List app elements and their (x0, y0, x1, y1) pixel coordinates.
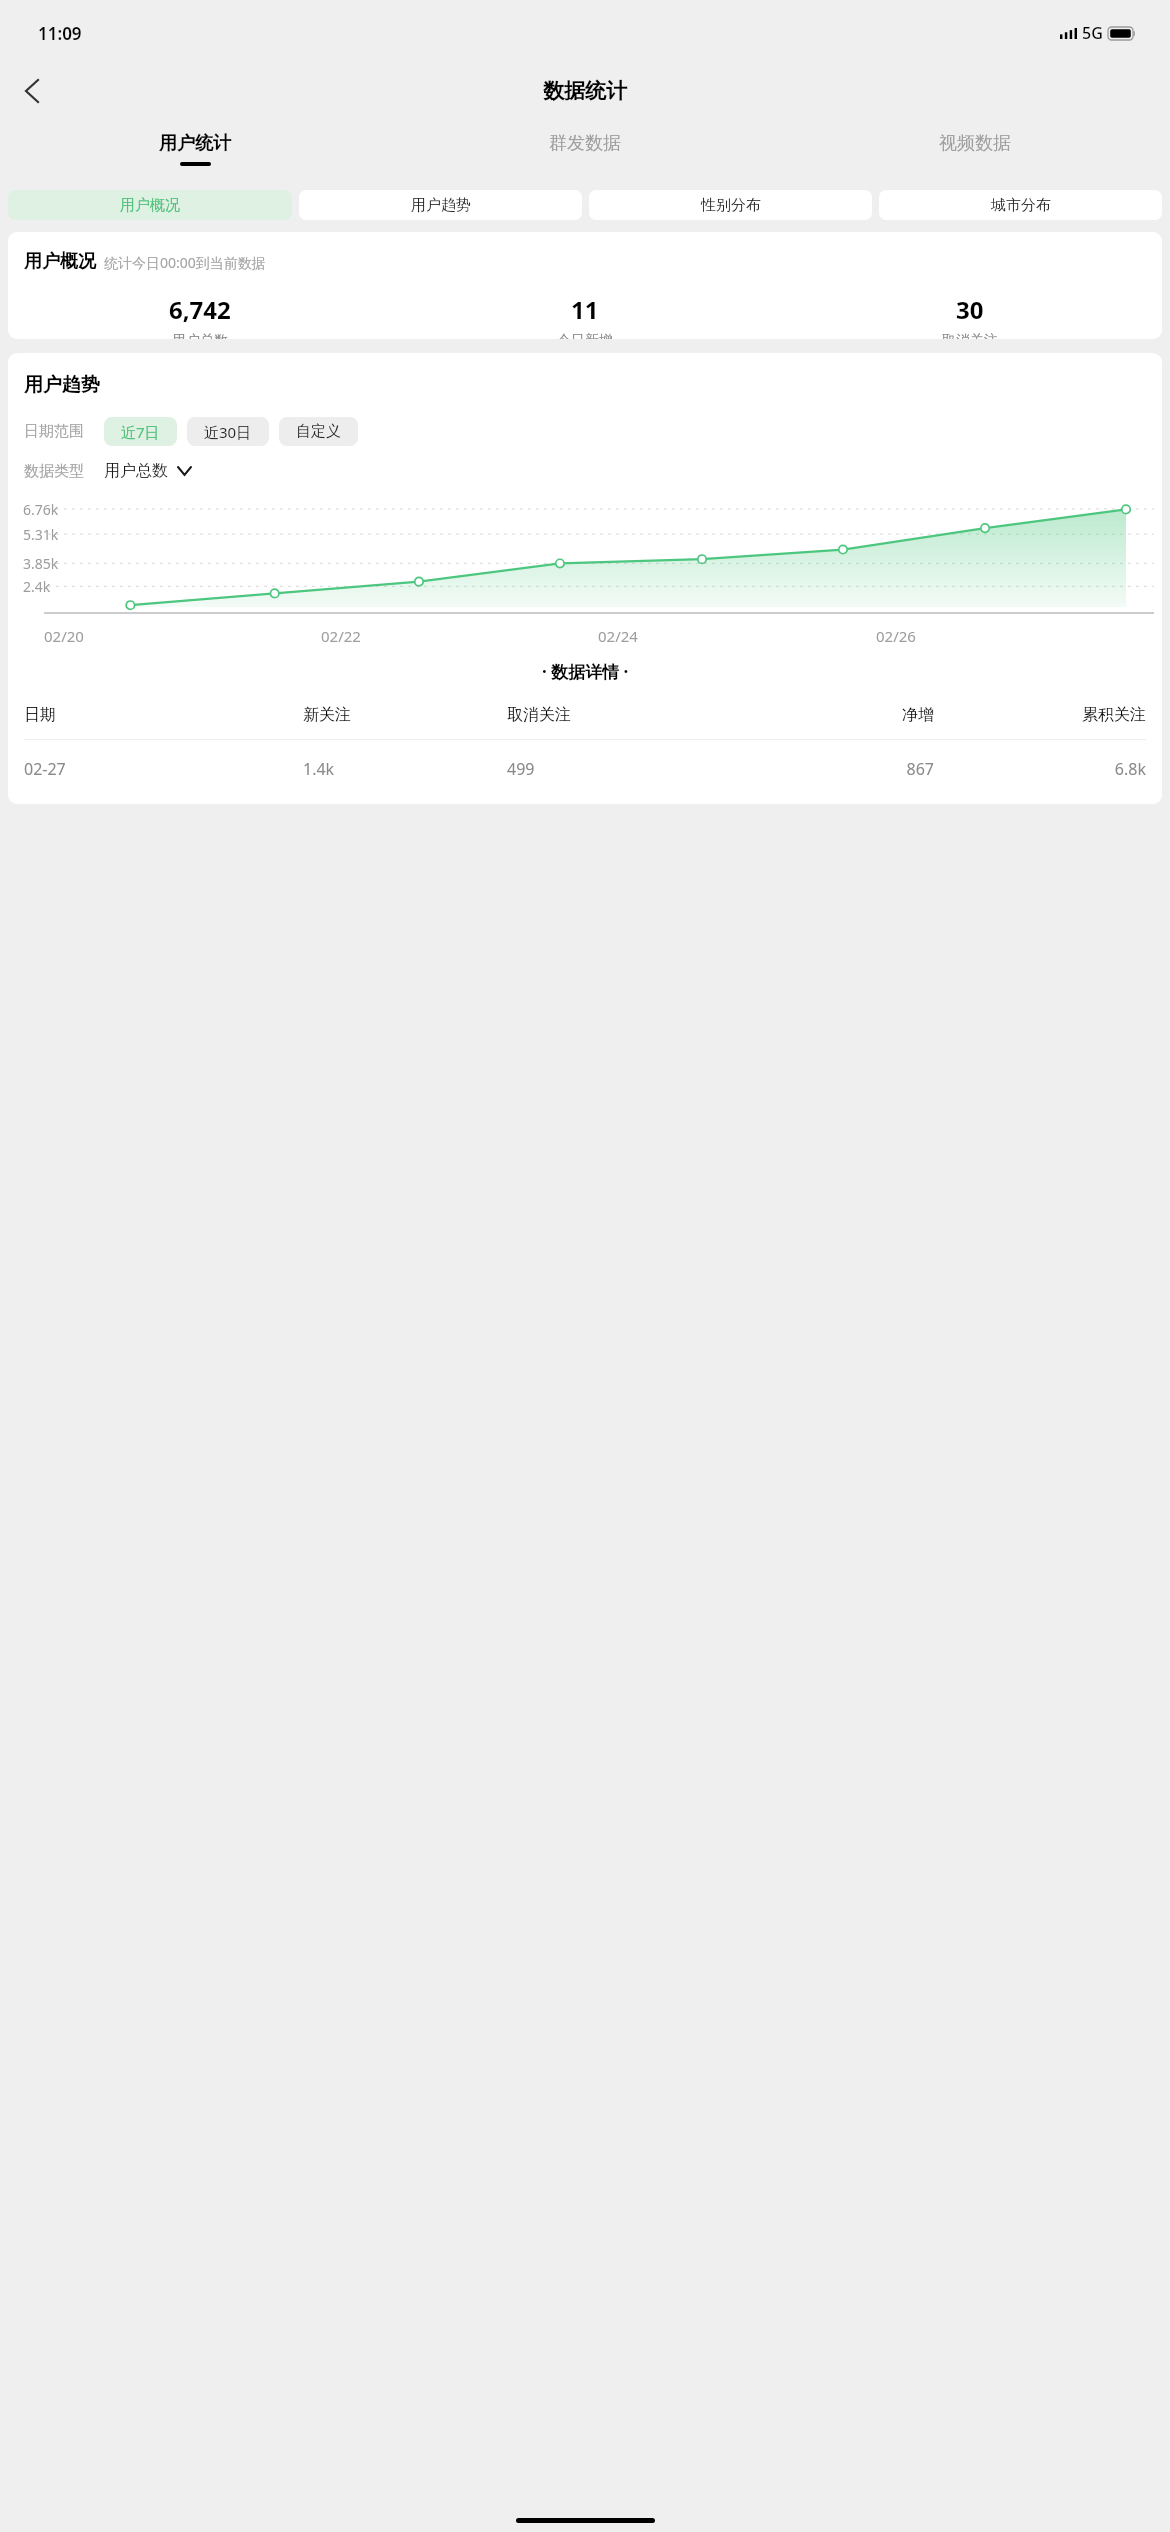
button[interactable]: 视频数据 (780, 120, 1170, 178)
button[interactable]: 用户统计 (0, 120, 390, 178)
staticText: 群发数据 (549, 132, 621, 155)
button[interactable]: Back (8, 67, 56, 115)
staticText: 02/22 (321, 626, 361, 646)
staticText: 日期 (24, 705, 303, 725)
staticText: 自定义 (296, 422, 341, 441)
staticText: 02/20 (44, 626, 84, 646)
staticText: 2.4k (23, 577, 51, 596)
button[interactable]: 数据类型 (24, 461, 191, 481)
staticText: 取消关注 (507, 705, 748, 725)
staticText: 近7日 (121, 422, 160, 442)
staticText: 6,742 (169, 293, 231, 326)
staticText: 用户总数 (172, 332, 228, 339)
staticText: 11 (571, 293, 599, 326)
staticText: 02/24 (598, 626, 638, 646)
staticText: 累积关注 (942, 705, 1146, 725)
staticText: 日期范围 (24, 422, 84, 441)
staticText: 1.4k (303, 758, 507, 780)
staticText: 30 (956, 293, 984, 326)
staticText: · 数据详情 · (542, 660, 629, 683)
staticText: 净增 (748, 705, 934, 725)
staticText: 今日新增 (557, 332, 613, 339)
staticText: 6.8k (942, 758, 1146, 780)
staticText: 6.76k (23, 500, 59, 519)
staticText: 3.85k (23, 554, 59, 573)
staticText: 5.31k (23, 525, 59, 544)
staticText: 数据统计 (543, 78, 627, 104)
staticText: 5G (1082, 22, 1103, 44)
staticText: 用户统计 (159, 132, 231, 155)
button[interactable]: 用户概况 (8, 190, 292, 220)
staticText: 499 (507, 758, 748, 780)
button[interactable]: 用户趋势 (299, 190, 582, 220)
staticText: 城市分布 (991, 196, 1051, 215)
staticText: 视频数据 (939, 132, 1011, 155)
staticText: 近30日 (204, 422, 252, 442)
button[interactable]: 近30日 (187, 417, 269, 446)
staticText: 用户趋势 (411, 196, 471, 215)
staticText: 用户概况 (120, 196, 180, 215)
staticText: 02-27 (24, 758, 303, 780)
button[interactable]: 城市分布 (879, 190, 1162, 220)
staticText: 性别分布 (701, 196, 761, 215)
staticText: 用户概况 (24, 250, 96, 273)
staticText: 用户总数 (104, 461, 168, 481)
button[interactable]: 性别分布 (589, 190, 872, 220)
staticText: 用户趋势 (24, 373, 100, 397)
staticText: 867 (748, 758, 934, 780)
staticText: 统计今日00:00到当前数据 (104, 253, 266, 272)
button[interactable]: 02-27 (24, 758, 1146, 780)
button[interactable]: 群发数据 (390, 120, 780, 178)
staticText: 新关注 (303, 705, 507, 725)
staticText: 02/26 (876, 626, 916, 646)
staticText: 数据类型 (24, 462, 84, 481)
button[interactable]: 近7日 (104, 417, 177, 446)
staticText: 取消关注 (942, 332, 998, 339)
staticText: 11:09 (38, 22, 82, 45)
button[interactable]: 自定义 (279, 417, 358, 446)
